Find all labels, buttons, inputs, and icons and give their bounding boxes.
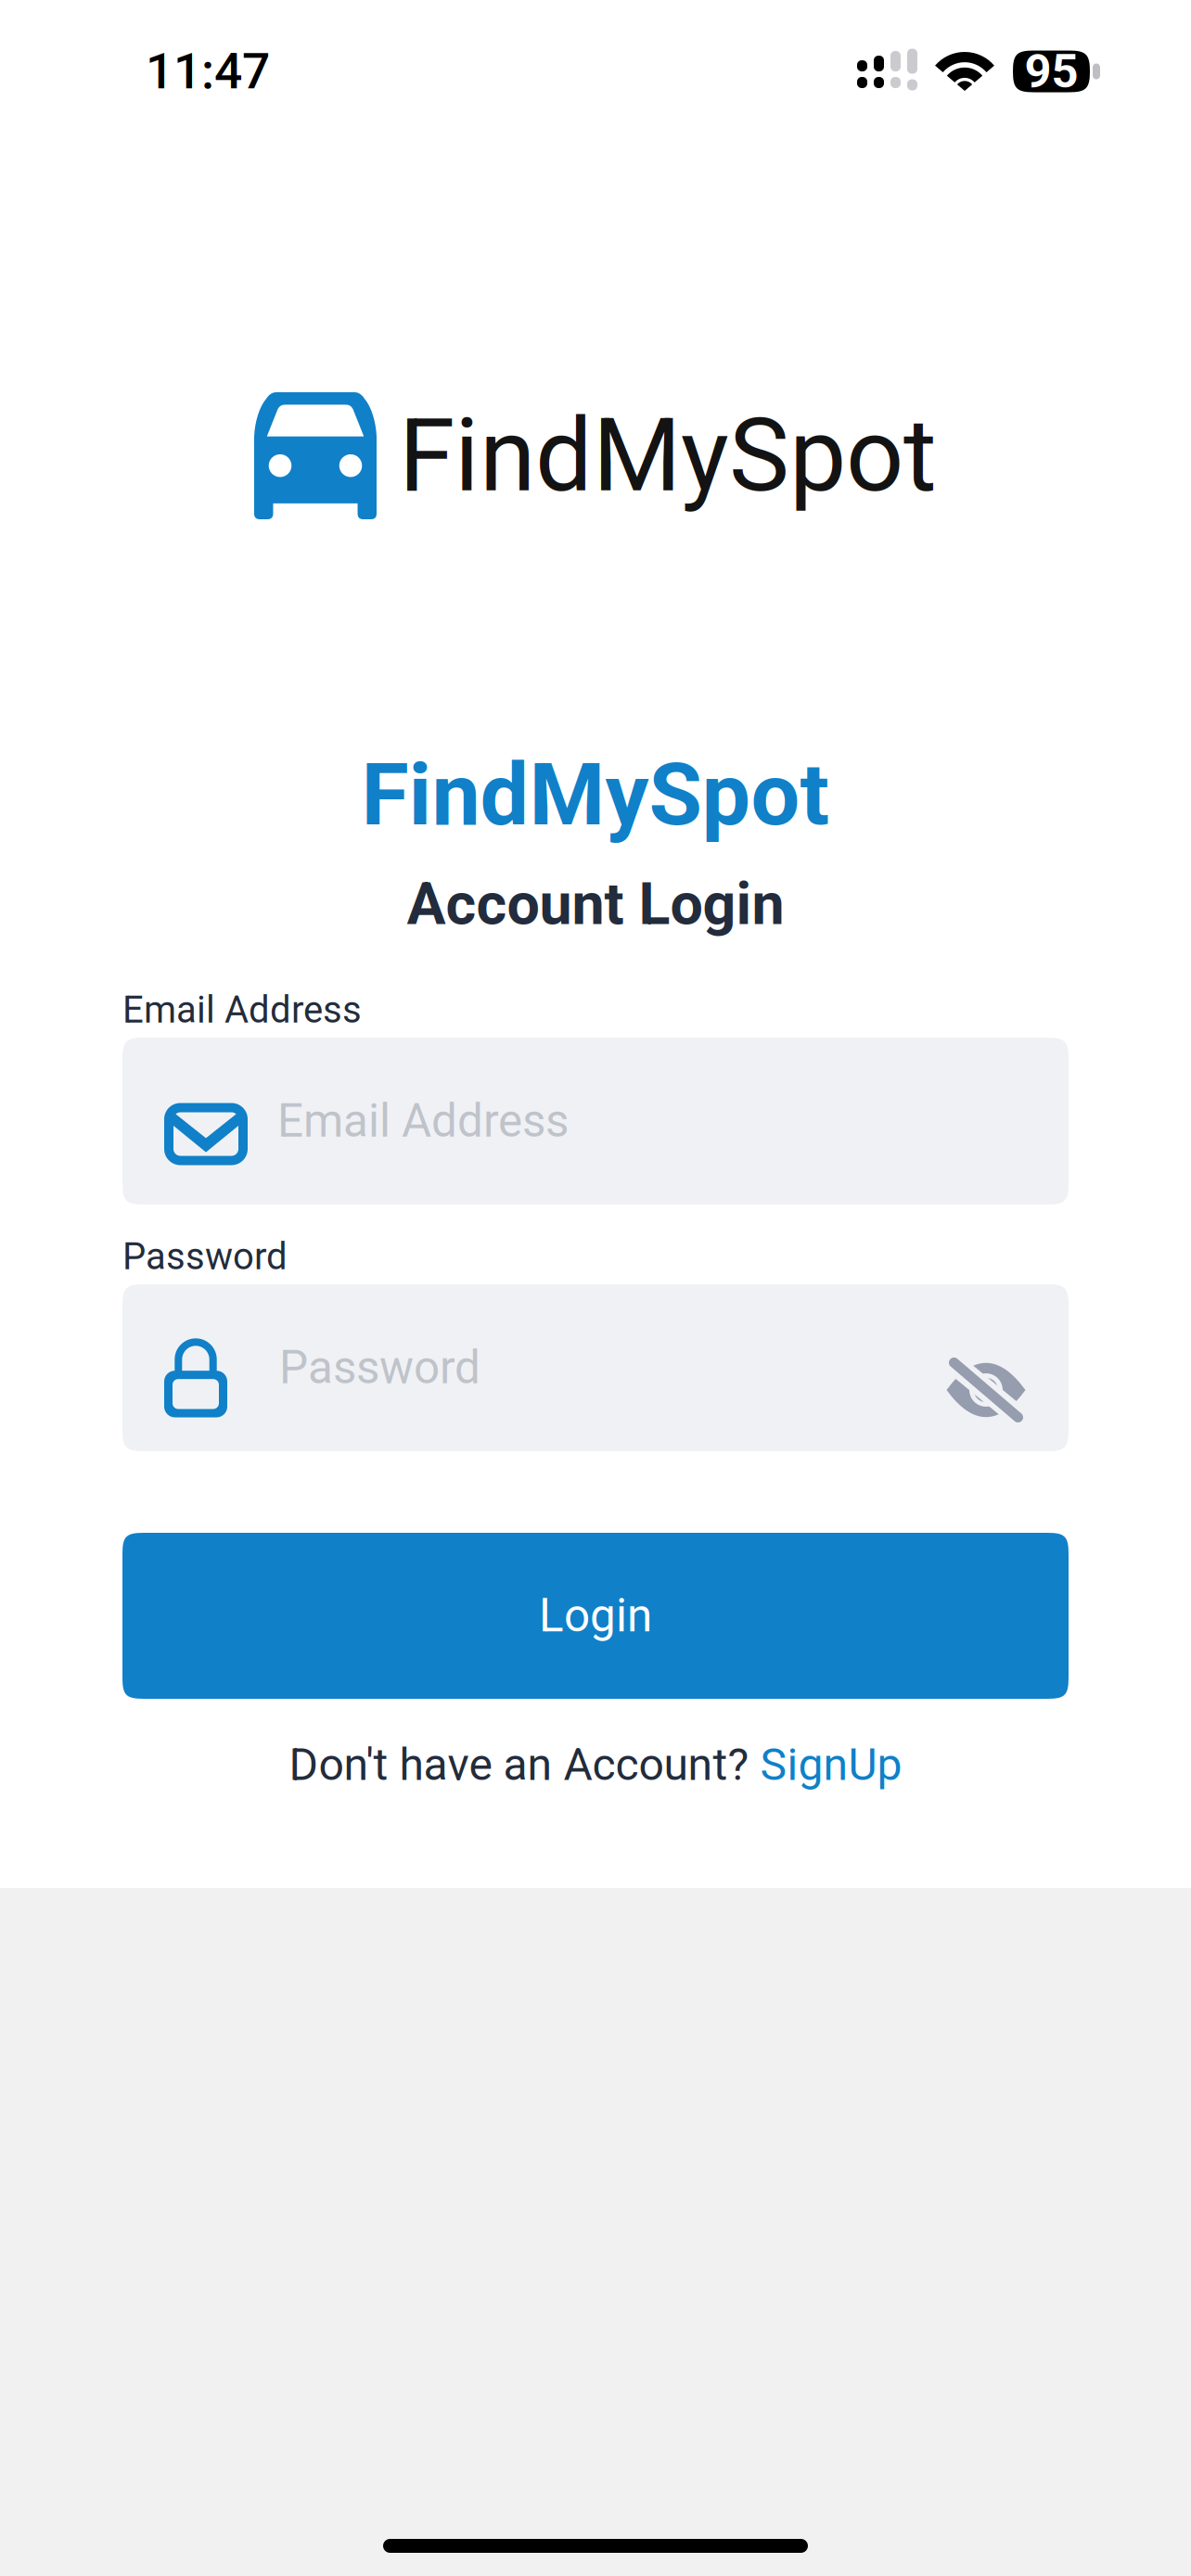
staticText: Password (122, 1235, 288, 1278)
staticText: 11:47 (146, 42, 270, 100)
staticText: FindMySpot (399, 396, 937, 515)
staticText: Login (539, 1589, 652, 1643)
staticText: FindMySpot (361, 744, 830, 845)
staticText: SignUp (760, 1739, 902, 1791)
button[interactable]: Don't have an Account? (289, 1739, 902, 1791)
staticText: Don't have an Account? (289, 1739, 760, 1791)
staticText: Password (279, 1341, 480, 1395)
staticText: Email Address (277, 1094, 569, 1148)
staticText: 95 (1025, 44, 1078, 99)
staticText: Account Login (407, 870, 784, 938)
button[interactable]: Show password (929, 1321, 1031, 1414)
staticText: Email Address (122, 988, 362, 1032)
button[interactable]: Login (122, 1533, 1069, 1699)
